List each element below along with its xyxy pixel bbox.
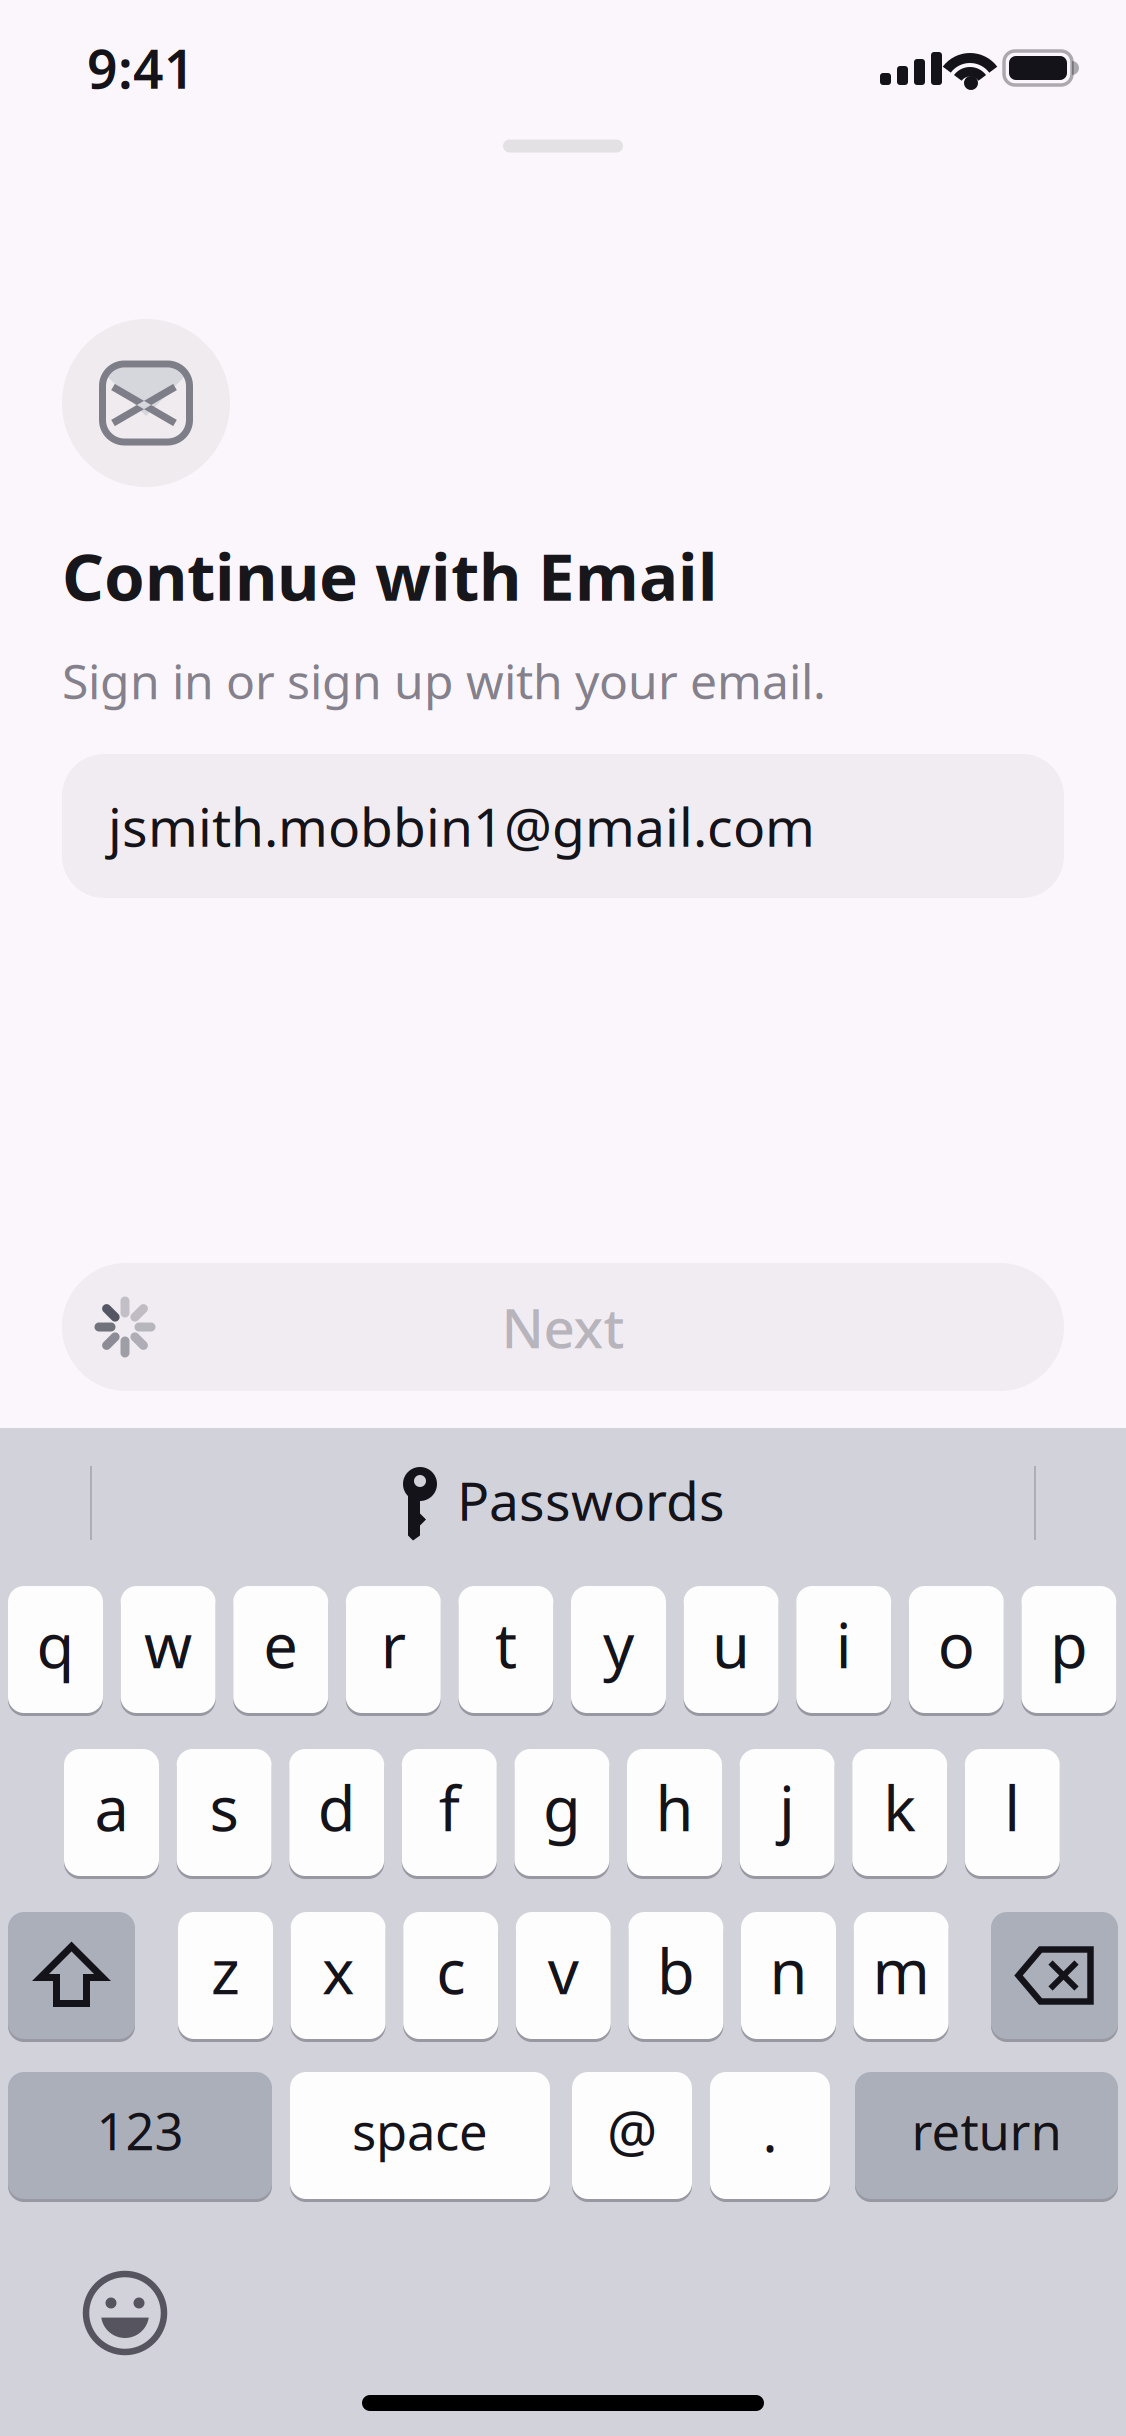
button[interactable]: Shift — [8, 1910, 135, 2040]
button[interactable]: s — [177, 1747, 272, 1877]
staticText: Continue with Email — [62, 532, 717, 619]
button[interactable]: z — [178, 1910, 273, 2040]
button[interactable]: x — [291, 1910, 386, 2040]
staticText: m — [873, 1930, 930, 2011]
staticText: . — [762, 2093, 777, 2168]
button[interactable]: q — [8, 1584, 103, 1714]
button[interactable]: u — [684, 1584, 779, 1714]
staticText: n — [769, 1930, 807, 2011]
button[interactable]: Passwords — [401, 1465, 725, 1535]
staticText: y — [603, 1604, 634, 1685]
staticText: Passwords — [457, 1465, 725, 1535]
button[interactable]: jsmith.mobbin1@gmail.com — [62, 754, 1064, 898]
staticText: o — [938, 1604, 975, 1685]
staticText: i — [836, 1604, 852, 1685]
staticText: 123 — [96, 2097, 183, 2164]
staticText: c — [436, 1930, 465, 2011]
button[interactable]: i — [796, 1584, 891, 1714]
button[interactable]: r — [346, 1584, 441, 1714]
button[interactable]: @ — [572, 2070, 692, 2200]
staticText: d — [318, 1767, 356, 1848]
staticText: l — [1004, 1767, 1020, 1848]
button[interactable]: space — [290, 2070, 550, 2200]
staticText: f — [439, 1767, 460, 1848]
button[interactable]: w — [121, 1584, 216, 1714]
staticText: x — [322, 1930, 354, 2011]
button[interactable]: n — [741, 1910, 836, 2040]
button[interactable]: o — [909, 1584, 1004, 1714]
staticText: h — [655, 1767, 693, 1848]
staticText: t — [495, 1604, 517, 1685]
staticText: j — [779, 1767, 795, 1848]
staticText: @ — [607, 2093, 657, 2168]
button[interactable]: Delete — [991, 1910, 1118, 2040]
button[interactable]: m — [854, 1910, 949, 2040]
button[interactable]: g — [514, 1747, 609, 1877]
button[interactable]: f — [402, 1747, 497, 1877]
button[interactable]: y — [571, 1584, 666, 1714]
button[interactable]: a — [64, 1747, 159, 1877]
staticText: jsmith.mobbin1@gmail.com — [108, 791, 815, 861]
staticText: k — [883, 1767, 916, 1848]
button[interactable]: d — [289, 1747, 384, 1877]
button[interactable]: p — [1021, 1584, 1116, 1714]
staticText: b — [657, 1930, 695, 2011]
button[interactable]: c — [403, 1910, 498, 2040]
button[interactable]: return — [855, 2070, 1118, 2200]
button[interactable]: . — [710, 2070, 830, 2200]
button[interactable]: e — [233, 1584, 328, 1714]
staticText: Next — [501, 1291, 624, 1363]
button[interactable]: t — [458, 1584, 553, 1714]
button[interactable]: k — [852, 1747, 947, 1877]
staticText: p — [1050, 1604, 1088, 1685]
staticText: return — [911, 2097, 1061, 2164]
staticText: e — [263, 1604, 298, 1685]
staticText: u — [712, 1604, 750, 1685]
button[interactable]: Emoji keyboard — [84, 2272, 166, 2354]
staticText: s — [210, 1767, 239, 1848]
staticText: q — [36, 1604, 74, 1685]
button[interactable]: b — [628, 1910, 723, 2040]
button[interactable]: Next — [62, 1263, 1064, 1391]
button[interactable]: l — [965, 1747, 1060, 1877]
staticText: 9:41 — [87, 33, 195, 103]
staticText: z — [211, 1930, 240, 2011]
staticText: v — [548, 1930, 579, 2011]
button[interactable]: h — [627, 1747, 722, 1877]
staticText: w — [144, 1604, 192, 1685]
staticText: Sign in or sign up with your email. — [62, 649, 826, 712]
staticText: g — [543, 1767, 581, 1848]
button[interactable]: 123 — [8, 2070, 272, 2200]
staticText: a — [94, 1767, 128, 1848]
staticText: r — [381, 1604, 406, 1685]
button[interactable]: j — [740, 1747, 835, 1877]
staticText: space — [352, 2097, 488, 2164]
button[interactable]: v — [516, 1910, 611, 2040]
